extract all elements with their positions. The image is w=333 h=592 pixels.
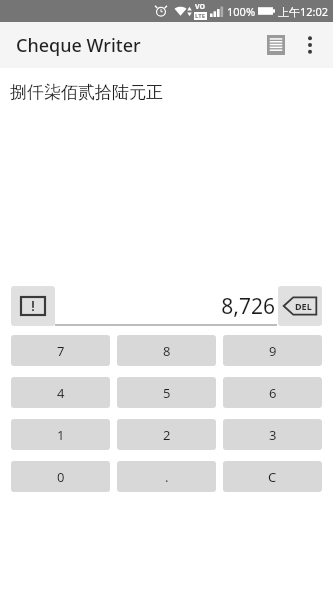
staticText: DEL <box>295 300 312 312</box>
staticText: VO <box>195 2 206 12</box>
button[interactable]: 6 <box>223 377 322 408</box>
button[interactable]: 2 <box>117 419 216 450</box>
button[interactable]: 1 <box>11 419 110 450</box>
button[interactable]: 8 <box>117 335 216 366</box>
staticText: C <box>268 468 277 486</box>
button[interactable]: History list <box>259 28 293 62</box>
button[interactable]: More options <box>293 28 327 62</box>
staticText: 0 <box>57 468 65 486</box>
staticText: 8 <box>163 342 171 360</box>
staticText: . <box>165 468 169 486</box>
staticText: 1 <box>57 426 65 444</box>
staticText: 8,726 <box>221 292 275 321</box>
button[interactable]: . <box>117 461 216 492</box>
staticText: 9 <box>269 342 277 360</box>
button[interactable]: 9 <box>223 335 322 366</box>
staticText: 2 <box>163 426 171 444</box>
staticText: 上午12:02 <box>278 4 329 19</box>
staticText: LTE <box>195 12 206 20</box>
button[interactable]: 8,726 <box>55 286 277 326</box>
button[interactable]: Info <box>11 286 55 326</box>
staticText: 7 <box>57 342 65 360</box>
staticText: Cheque Writer <box>16 33 141 58</box>
staticText: 捌仟柒佰贰拾陆元正 <box>10 82 163 103</box>
staticText: 4 <box>57 384 65 402</box>
staticText: 100% <box>227 4 256 19</box>
button[interactable]: Delete <box>278 286 322 326</box>
staticText: 3 <box>269 426 277 444</box>
staticText: 5 <box>163 384 171 402</box>
staticText: 6 <box>269 384 277 402</box>
button[interactable]: 7 <box>11 335 110 366</box>
button[interactable]: C <box>223 461 322 492</box>
button[interactable]: 3 <box>223 419 322 450</box>
button[interactable]: 4 <box>11 377 110 408</box>
button[interactable]: 0 <box>11 461 110 492</box>
button[interactable]: 5 <box>117 377 216 408</box>
